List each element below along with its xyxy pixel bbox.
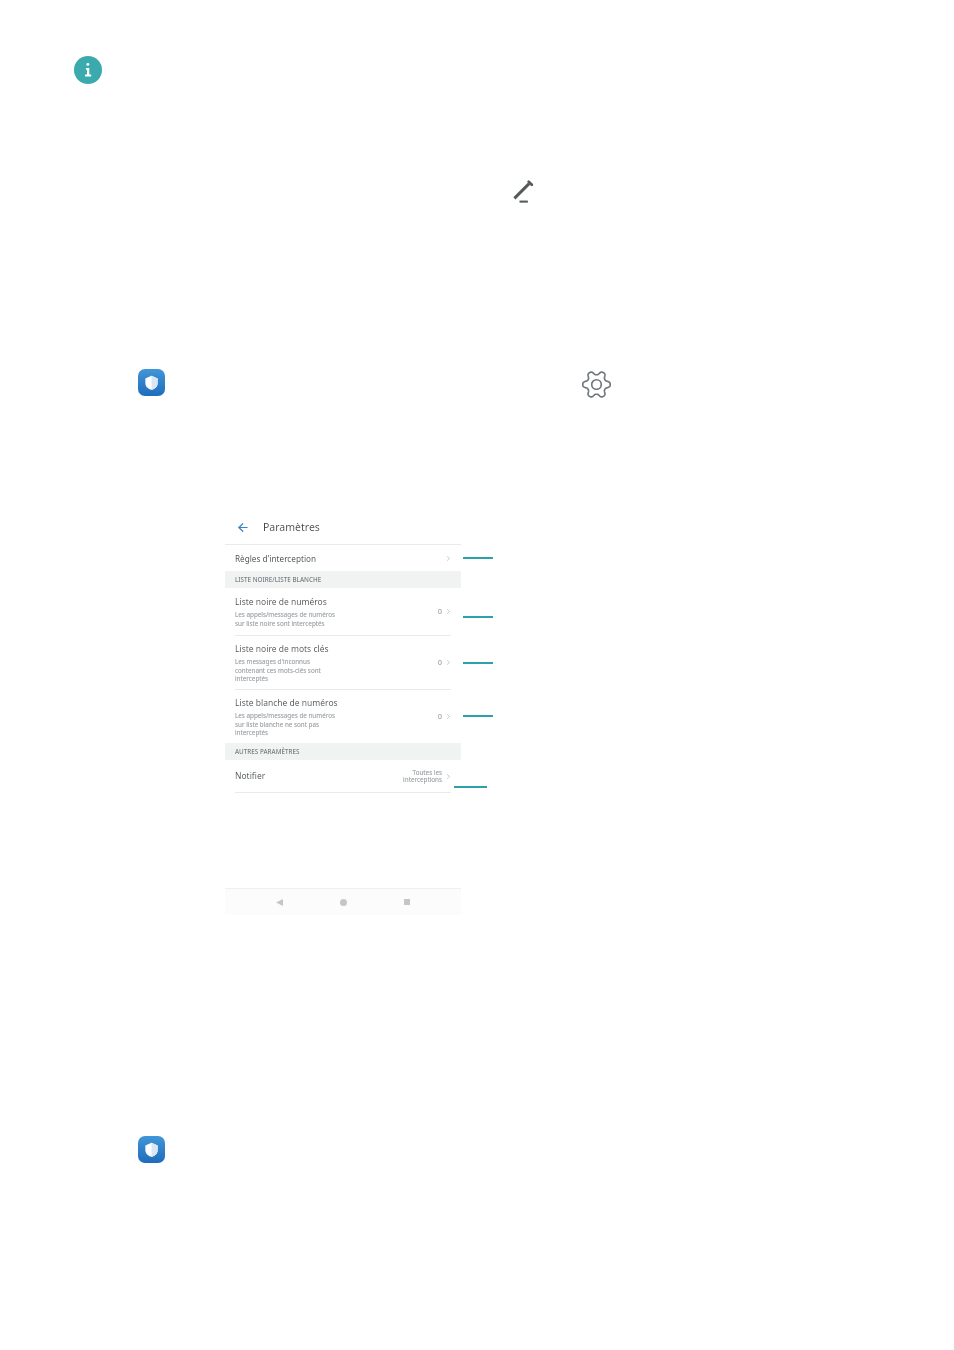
button[interactable]: Home: [333, 892, 353, 912]
button[interactable]: Information: [74, 56, 102, 84]
button[interactable]: Liste noire de numéros: [225, 588, 461, 635]
button[interactable]: Edit: [508, 176, 540, 208]
button[interactable]: Security app: [138, 369, 165, 396]
staticText: Les appels/messages de numéros sur liste…: [235, 711, 335, 737]
staticText: Toutes les interceptions: [403, 768, 442, 784]
button[interactable]: Notifier: [225, 760, 461, 792]
staticText: Liste noire de numéros: [235, 596, 327, 608]
staticText: Liste blanche de numéros: [235, 697, 338, 709]
button[interactable]: Liste blanche de numéros: [225, 690, 461, 743]
button[interactable]: Settings: [580, 368, 613, 401]
staticText: Liste noire de mots clés: [235, 643, 329, 655]
staticText: 0: [438, 607, 442, 616]
button[interactable]: Back: [269, 892, 289, 912]
staticText: Règles d'interception: [235, 553, 317, 564]
staticText: AUTRES PARAMÈTRES: [235, 747, 300, 756]
staticText: Paramètres: [263, 520, 320, 534]
staticText: LISTE NOIRE/LISTE BLANCHE: [235, 575, 322, 584]
staticText: 0: [438, 658, 442, 667]
button[interactable]: Recents: [397, 892, 417, 912]
button[interactable]: Règles d'interception: [225, 545, 461, 571]
staticText: Notifier: [235, 770, 266, 782]
button[interactable]: Security app: [138, 1136, 165, 1163]
staticText: 0: [438, 712, 442, 721]
staticText: Les appels/messages de numéros sur liste…: [235, 610, 335, 628]
button[interactable]: Liste noire de mots clés: [225, 636, 461, 689]
button[interactable]: Back: [234, 518, 252, 536]
staticText: Les messages d'inconnus contenant ces mo…: [235, 657, 321, 683]
